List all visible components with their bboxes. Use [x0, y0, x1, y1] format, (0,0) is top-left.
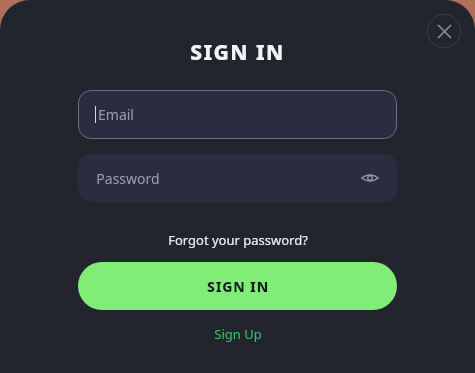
button[interactable]: Sign Up [206, 322, 270, 346]
staticText: Password [96, 169, 160, 188]
staticText: SIGN IN [207, 277, 269, 296]
button[interactable]: Show password [355, 163, 385, 193]
button[interactable]: SIGN IN [78, 262, 397, 310]
button[interactable]: Close [427, 14, 461, 48]
staticText: Email [98, 105, 134, 124]
staticText: Forgot your password? [168, 231, 308, 249]
button[interactable]: Forgot your password? [162, 228, 314, 252]
button[interactable]: Email [78, 90, 397, 139]
button[interactable]: Password [78, 154, 397, 202]
staticText: SIGN IN [190, 38, 285, 67]
staticText: Sign Up [214, 325, 262, 343]
